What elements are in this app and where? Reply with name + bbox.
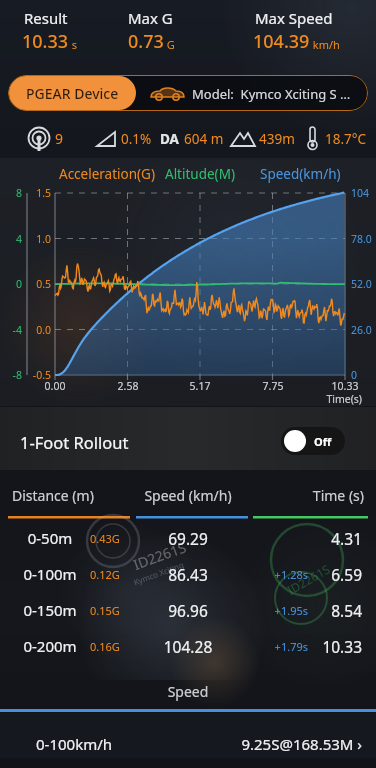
staticText: 0.00: [37, 379, 73, 393]
staticText: 0: [351, 368, 358, 382]
staticText: 0-100km/h: [36, 734, 113, 754]
staticText: Off: [314, 434, 332, 449]
staticText: 0.12G: [90, 567, 120, 582]
staticText: 0.0: [28, 323, 51, 337]
staticText: 0.5: [28, 277, 51, 291]
staticText: 104.39: [253, 29, 310, 54]
staticText: 0-150m: [4, 600, 96, 620]
staticText: +1.95s: [255, 603, 308, 618]
staticText: 439m: [259, 130, 295, 148]
staticText: 86.43: [120, 564, 256, 585]
button[interactable]: 1-Foot Rollout: [0, 407, 376, 470]
staticText: -8: [0, 368, 22, 382]
staticText: +1.79s: [255, 639, 308, 654]
button[interactable]: [0, 556, 376, 592]
staticText: 10.33: [302, 636, 362, 657]
button[interactable]: PGEAR Device: [9, 76, 136, 110]
staticText: 0.43G: [90, 531, 120, 546]
staticText: Acceleration(G): [59, 165, 155, 183]
staticText: 96.96: [120, 600, 256, 621]
staticText: 10.33: [22, 29, 69, 54]
staticText: 104: [351, 186, 370, 200]
staticText: DA: [160, 130, 179, 148]
staticText: 0.16G: [90, 639, 120, 654]
staticText: 0.1%: [121, 130, 152, 148]
staticText: -4: [0, 323, 22, 337]
staticText: 10.33: [327, 379, 363, 393]
staticText: s: [69, 37, 78, 52]
staticText: Speed(km/h): [260, 165, 341, 183]
staticText: 7.75: [255, 379, 291, 393]
staticText: km/h: [310, 37, 340, 52]
staticText: +1.28s: [255, 567, 308, 582]
staticText: Time (s): [280, 486, 364, 505]
staticText: Altitude(M): [165, 165, 235, 183]
staticText: Max Speed: [255, 8, 333, 28]
staticText: 0.73: [128, 29, 164, 54]
staticText: 0-100m: [4, 564, 96, 584]
staticText: 1.0: [28, 232, 51, 246]
button[interactable]: [0, 520, 376, 556]
staticText: Speed (km/h): [120, 486, 256, 505]
staticText: Model: Kymco Xciting S …: [192, 85, 351, 103]
button[interactable]: 0-100km/h: [0, 713, 376, 758]
staticText: PGEAR Device: [26, 84, 119, 103]
staticText: 8.54: [302, 600, 362, 621]
button[interactable]: [0, 628, 376, 664]
staticText: Result: [24, 8, 68, 28]
staticText: 69.29: [120, 528, 256, 549]
staticText: 0-50m: [4, 528, 96, 548]
staticText: 9: [55, 129, 64, 148]
staticText: Time(s): [300, 392, 362, 406]
staticText: G: [164, 37, 175, 52]
staticText: 2.58: [110, 379, 146, 393]
button[interactable]: PGEAR Device: [8, 75, 368, 111]
staticText: 0: [0, 277, 22, 291]
staticText: 9.25S@168.53M ›: [220, 734, 362, 754]
staticText: Distance (m): [12, 486, 94, 505]
staticText: 104.28: [120, 636, 256, 657]
staticText: 26.0: [351, 323, 372, 337]
staticText: 4.31: [302, 528, 362, 549]
staticText: -0.5: [28, 368, 51, 382]
staticText: 0-200m: [4, 636, 96, 656]
staticText: 52.0: [351, 277, 372, 291]
staticText: Speed: [0, 682, 376, 701]
button[interactable]: [0, 592, 376, 628]
staticText: 6.59: [302, 564, 362, 585]
staticText: 18.7°C: [325, 130, 367, 148]
staticText: 4: [0, 232, 22, 246]
staticText: 8: [0, 186, 22, 200]
staticText: Max G: [128, 8, 173, 28]
staticText: 1.5: [28, 186, 51, 200]
staticText: 5.17: [182, 379, 218, 393]
staticText: 78.0: [351, 232, 372, 246]
staticText: 1-Foot Rollout: [20, 431, 129, 453]
button[interactable]: Off: [281, 427, 345, 455]
staticText: 604 m: [184, 130, 224, 148]
staticText: 0.15G: [90, 603, 120, 618]
